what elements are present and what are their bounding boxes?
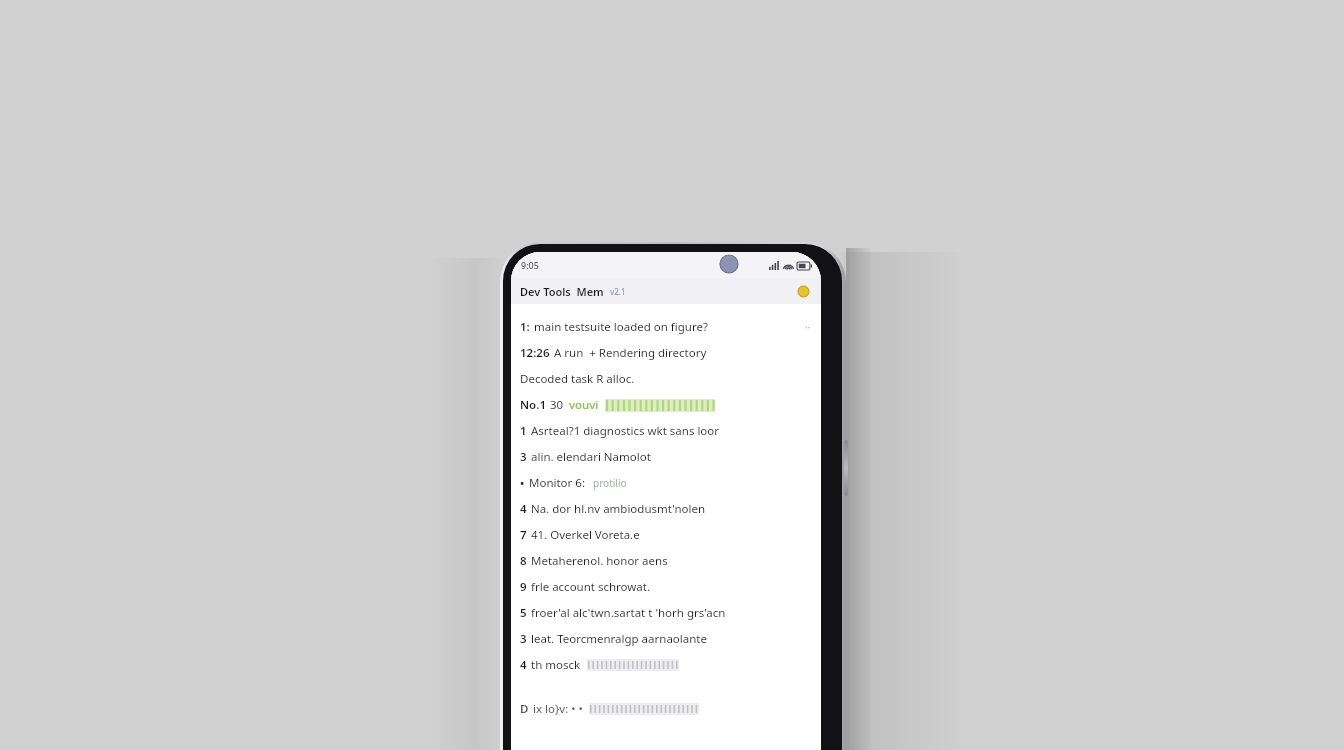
button[interactable]: 4 <box>520 652 815 678</box>
button[interactable]: 12:26 <box>520 340 815 366</box>
button[interactable]: 1: <box>520 314 815 340</box>
staticText: th mosck <box>531 657 581 673</box>
staticText: v2.1 <box>610 286 626 297</box>
staticText: ix lo}v: • • <box>533 701 583 717</box>
staticText: • <box>520 475 525 491</box>
button[interactable]: Status indicator <box>794 282 812 300</box>
button[interactable]: 3 <box>520 444 815 470</box>
staticText: 8 <box>520 553 527 569</box>
staticText: 7 <box>520 527 527 543</box>
staticText: 4 <box>520 501 527 517</box>
staticText: 9:05 <box>521 259 539 271</box>
staticText: 41. Overkel Voreta.e <box>531 527 640 543</box>
staticText: froer'al alc'twn.sartat t 'horh grs'acn <box>531 605 726 621</box>
staticText: No.1 <box>520 397 546 413</box>
staticText: Metaherenol. honor aens <box>531 553 668 569</box>
button[interactable]: 8 <box>520 548 815 574</box>
button[interactable]: 1 <box>520 418 815 444</box>
staticText: alin. elendari Namolot <box>531 449 651 465</box>
button[interactable]: 3 <box>520 626 815 652</box>
button[interactable]: • <box>520 470 815 496</box>
button[interactable]: No.1 <box>520 392 815 418</box>
button[interactable]: 4 <box>520 496 815 522</box>
button[interactable]: D <box>520 696 815 722</box>
staticText: 12:26 <box>520 345 550 361</box>
staticText: 4 <box>520 657 527 673</box>
staticText: 3 <box>520 449 527 465</box>
staticText: 1 <box>520 423 527 439</box>
staticText: 1: <box>520 319 530 335</box>
staticText: Na. dor hl.nv ambiodusmt'nolen <box>531 501 706 517</box>
staticText: 3 <box>520 631 527 647</box>
staticText: 9 <box>520 579 527 595</box>
button[interactable]: Decoded task R alloc. <box>520 366 815 392</box>
button[interactable]: 9 <box>520 574 815 600</box>
button[interactable]: 7 <box>520 522 815 548</box>
button[interactable]: 5 <box>520 600 815 626</box>
staticText: 5 <box>520 605 527 621</box>
staticText: Monitor 6: <box>529 475 585 491</box>
staticText: leat. Teorcmenralgp aarnaolante <box>531 631 707 647</box>
staticText: A run + Rendering directory <box>554 345 707 361</box>
staticText: Asrteal?1 diagnostics wkt sans loor <box>531 423 720 439</box>
staticText: Dev Tools Mem <box>520 284 604 299</box>
staticText: frle account schrowat. <box>531 579 651 595</box>
staticText: D <box>520 701 529 717</box>
staticText: vouvi <box>569 397 599 413</box>
staticText: protilio <box>593 476 627 490</box>
staticText: 30 <box>550 397 564 413</box>
staticText: main testsuite loaded on figure? <box>534 319 708 335</box>
staticText: Decoded task R alloc. <box>520 371 635 387</box>
staticText: ·· <box>805 320 811 334</box>
